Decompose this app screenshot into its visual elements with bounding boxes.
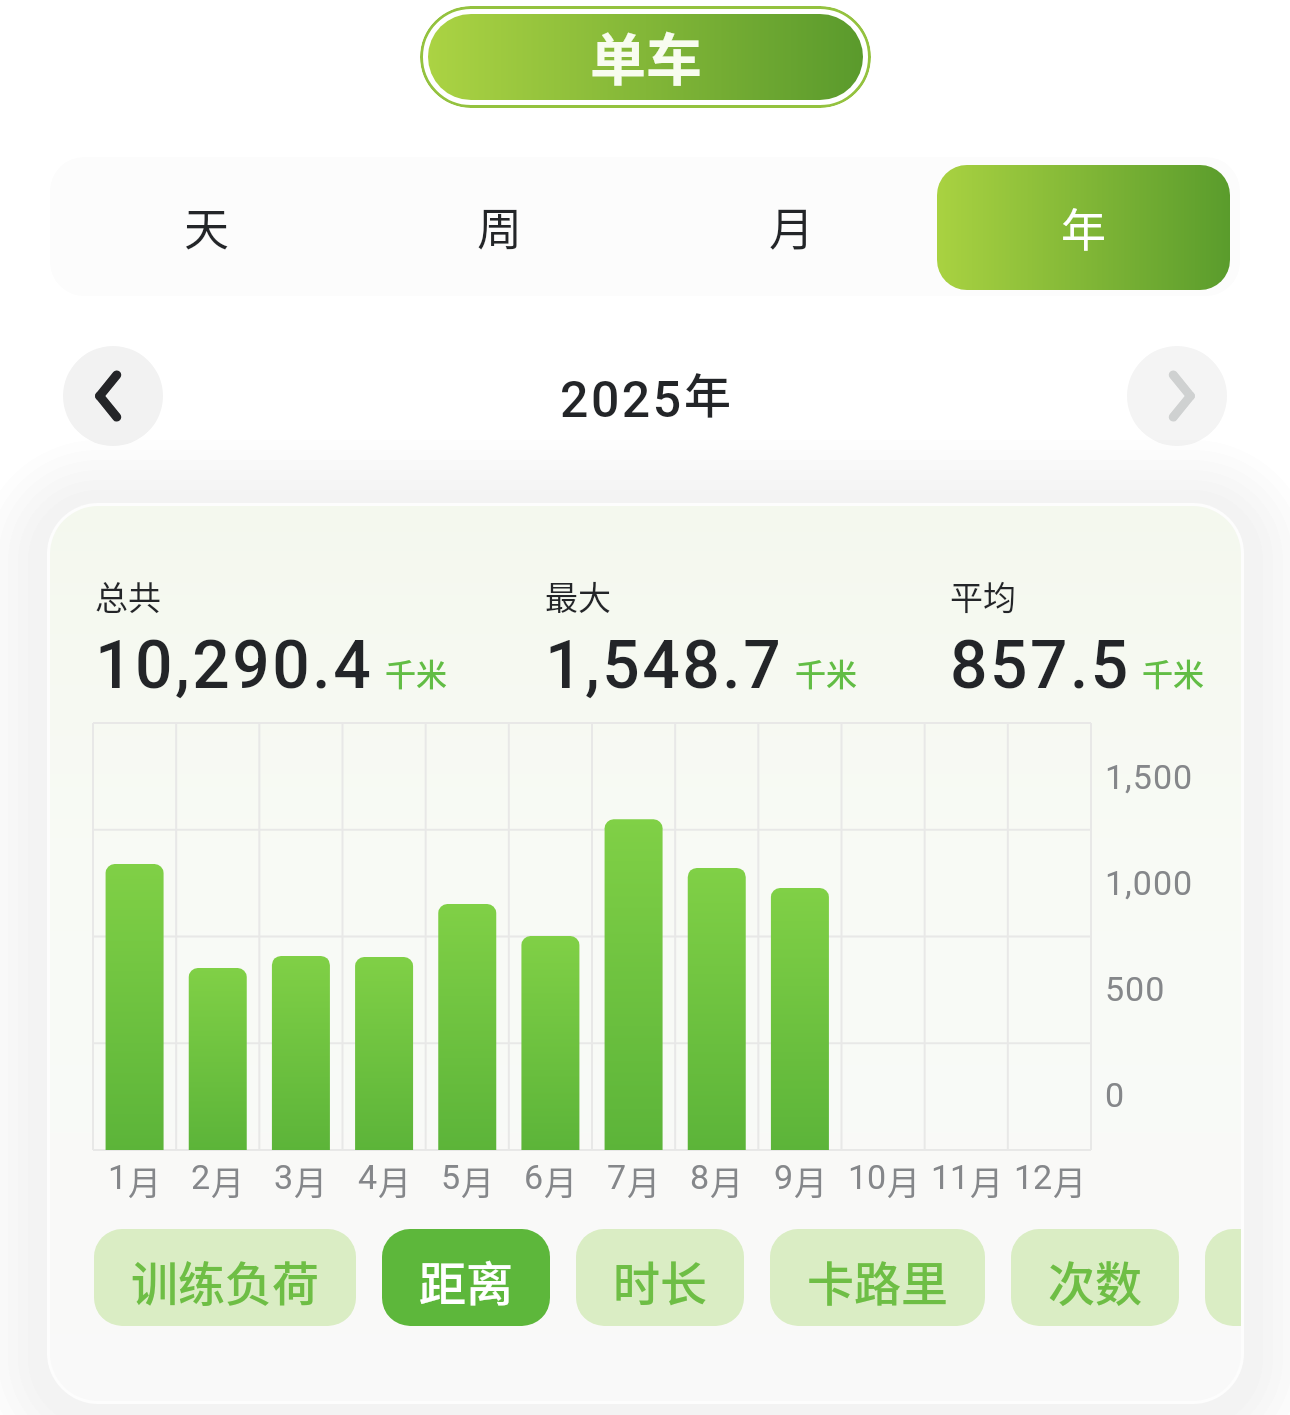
staticText: 卡路里 [807, 1246, 948, 1314]
button[interactable]: 时长 [576, 1229, 744, 1326]
staticText: 千米 [795, 650, 857, 695]
staticText: 月 [294, 1157, 327, 1205]
staticText: 年 [1061, 195, 1107, 260]
staticText: 1 [108, 1157, 128, 1197]
staticText: 10 [848, 1157, 887, 1197]
staticText: 月 [970, 1157, 1003, 1205]
staticText: 次数 [1048, 1246, 1142, 1314]
staticText: 月 [211, 1157, 244, 1205]
staticText: 1,548.7 [545, 627, 784, 704]
staticText: 3 [274, 1157, 294, 1197]
staticText: 9 [774, 1157, 794, 1197]
button[interactable]: 距离 [382, 1229, 550, 1326]
staticText: 训练负荷 [131, 1246, 319, 1314]
staticText: 月 [1053, 1157, 1086, 1205]
button[interactable]: 次数 [1011, 1229, 1179, 1326]
button[interactable]: 卡路里 [770, 1229, 985, 1326]
staticText: 11 [931, 1157, 970, 1197]
button[interactable]: 单车 [428, 14, 863, 100]
staticText: 年 [684, 358, 731, 426]
staticText: 2025 [560, 371, 684, 430]
button[interactable]: 训练负荷 [94, 1229, 356, 1326]
staticText: 天 [184, 194, 230, 259]
staticText: 4 [358, 1157, 378, 1197]
button[interactable]: Next year [1127, 346, 1227, 446]
staticText: 1,000 [1105, 863, 1194, 903]
staticText: 1,500 [1105, 757, 1194, 797]
staticText: 距离 [419, 1246, 513, 1314]
staticText: 10,290.4 [95, 627, 374, 704]
button[interactable]: 月 [645, 157, 938, 296]
staticText: 月 [710, 1157, 743, 1205]
staticText: 月 [794, 1157, 827, 1205]
staticText: 月 [544, 1157, 577, 1205]
staticText: 总共 [95, 572, 161, 620]
staticText: 500 [1105, 969, 1166, 1009]
staticText: 周 [477, 194, 523, 259]
staticText: 月 [128, 1157, 161, 1205]
staticText: 2 [191, 1157, 211, 1197]
staticText: 月 [887, 1157, 920, 1205]
staticText: 千米 [1142, 650, 1204, 695]
staticText: 最大 [545, 572, 611, 620]
staticText: 8 [690, 1157, 710, 1197]
staticText: 月 [378, 1157, 411, 1205]
staticText: 12 [1014, 1157, 1053, 1197]
staticText: 6 [524, 1157, 544, 1197]
button[interactable]: 最大 [1205, 1229, 1241, 1326]
staticText: 千米 [385, 650, 447, 695]
button[interactable]: Previous year [63, 346, 163, 446]
staticText: 月 [627, 1157, 660, 1205]
staticText: 单车 [590, 15, 702, 96]
staticText: 5 [441, 1157, 461, 1197]
staticText: 平均 [950, 572, 1016, 620]
button[interactable]: 年 [937, 165, 1230, 290]
staticText: 857.5 [950, 627, 1131, 704]
staticText: 7 [607, 1157, 627, 1197]
button[interactable]: 周 [353, 157, 646, 296]
button[interactable]: 天 [60, 157, 353, 296]
staticText: 0 [1105, 1075, 1126, 1115]
staticText: 月 [461, 1157, 494, 1205]
staticText: 月 [769, 194, 815, 259]
staticText: 时长 [613, 1246, 707, 1314]
